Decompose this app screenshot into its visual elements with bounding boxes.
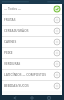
staticText: LATICÍNIOS — COMPOSTOS [4, 73, 46, 77]
staticText: CARNES [4, 40, 17, 44]
button[interactable]: CEREAIS/GRÃOS [2, 26, 62, 36]
button[interactable]: CARNES [2, 37, 62, 47]
staticText: VERDURAS [4, 62, 21, 66]
button[interactable]: Select [53, 60, 61, 68]
staticText: — Todos — [4, 7, 21, 11]
button[interactable]: Back [13, 96, 17, 100]
button[interactable]: Recents [47, 96, 51, 100]
button[interactable]: LATICÍNIOS — COMPOSTOS [2, 70, 62, 80]
button[interactable]: Select [53, 49, 61, 57]
button[interactable]: Select [53, 71, 61, 79]
button[interactable]: Select [53, 16, 61, 24]
button[interactable]: Select [53, 38, 61, 46]
button[interactable]: — Todos — [2, 4, 62, 14]
button[interactable]: FRUTAS [2, 15, 62, 25]
button[interactable]: Home [30, 96, 34, 100]
staticText: BEBIDAS/SUCOS [4, 84, 29, 88]
button[interactable]: VERDURAS [2, 59, 62, 69]
button[interactable]: PEIXE [2, 48, 62, 58]
button[interactable]: BEBIDAS/SUCOS [2, 81, 62, 91]
staticText: FRUTAS [4, 18, 16, 22]
staticText: PEIXE [4, 51, 13, 55]
button[interactable]: Select [53, 82, 61, 90]
button[interactable]: Select [53, 27, 61, 35]
staticText: CEREAIS/GRÃOS [4, 29, 29, 33]
button[interactable]: Selected [53, 5, 61, 13]
